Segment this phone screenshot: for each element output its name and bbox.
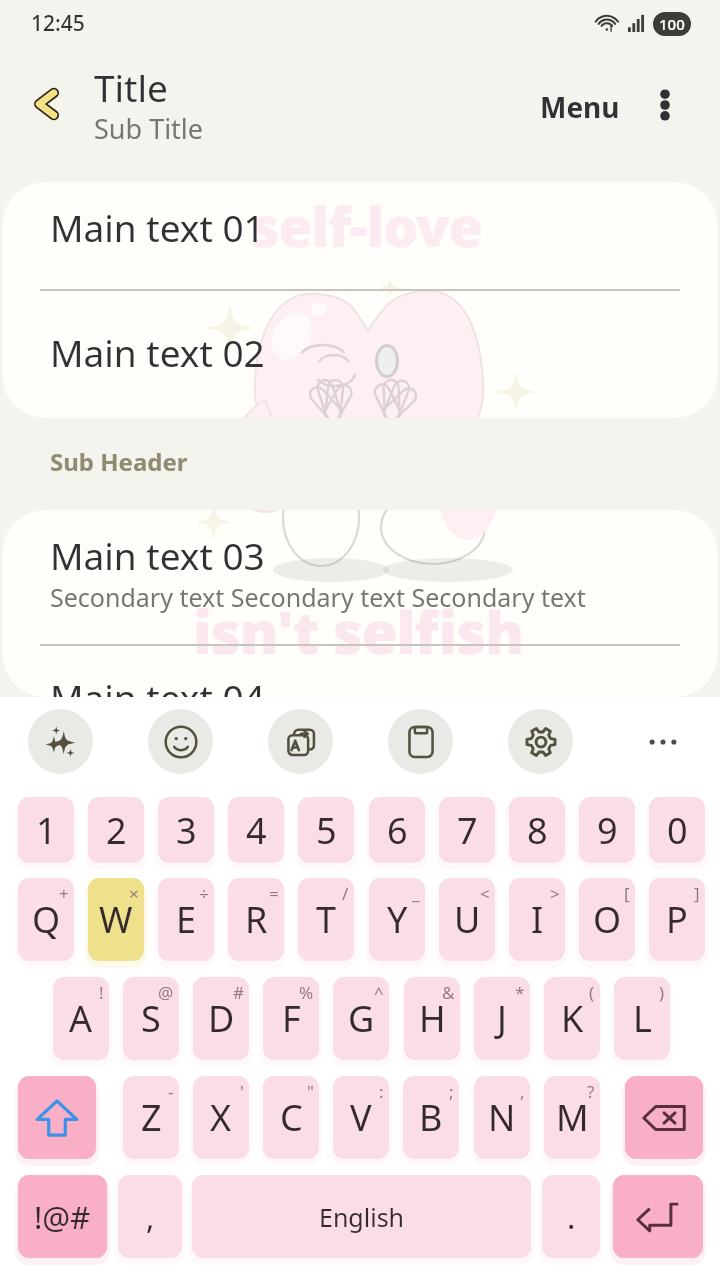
button[interactable]: Settings — [508, 709, 573, 774]
staticText: L — [633, 994, 652, 1043]
button[interactable]: Q — [18, 878, 74, 961]
button[interactable]: Main text 02 — [2, 302, 718, 402]
staticText: R — [245, 895, 268, 944]
button[interactable]: 9 — [579, 797, 635, 863]
button[interactable]: Enter — [613, 1175, 703, 1258]
button[interactable]: Main text 04 — [2, 647, 718, 747]
button[interactable]: More options — [636, 76, 694, 134]
staticText: F — [282, 994, 301, 1043]
button[interactable]: V — [333, 1076, 389, 1159]
staticText: self-love — [251, 188, 482, 263]
button[interactable]: Y — [369, 878, 425, 961]
staticText: V — [350, 1093, 372, 1142]
staticText: Sub Title — [94, 110, 204, 147]
button[interactable]: 0 — [649, 797, 705, 863]
staticText: 12:45 — [31, 9, 85, 38]
button[interactable]: C — [263, 1076, 319, 1159]
button[interactable]: . — [542, 1175, 600, 1258]
button[interactable]: P — [649, 878, 705, 961]
button[interactable]: Back — [18, 76, 74, 132]
button[interactable]: 7 — [439, 797, 495, 863]
staticText: # — [233, 981, 244, 1004]
staticText: _ — [412, 882, 420, 905]
staticText: English — [319, 1200, 405, 1234]
staticText: ) — [659, 981, 665, 1004]
button[interactable]: Main text 03 — [2, 504, 718, 639]
button[interactable]: Shift — [18, 1076, 96, 1159]
button[interactable]: N — [474, 1076, 530, 1159]
button[interactable]: A — [53, 977, 109, 1060]
button[interactable]: H — [404, 977, 460, 1060]
button[interactable]: !@# — [18, 1175, 107, 1258]
staticText: & — [442, 981, 455, 1004]
button[interactable]: D — [193, 977, 249, 1060]
staticText: K — [561, 994, 584, 1043]
staticText: 4 — [246, 806, 267, 855]
button[interactable]: I — [509, 878, 565, 961]
button[interactable]: Title — [94, 62, 168, 112]
staticText: A — [69, 994, 93, 1043]
button[interactable]: J — [474, 977, 530, 1060]
button[interactable]: O — [579, 878, 635, 961]
staticText: ÷ — [199, 882, 209, 905]
button[interactable]: R — [228, 878, 284, 961]
button[interactable]: S — [123, 977, 179, 1060]
button[interactable]: Menu — [524, 78, 636, 136]
staticText: 2 — [106, 806, 127, 855]
staticText: × — [129, 882, 139, 905]
button[interactable]: Emoji — [148, 709, 213, 774]
staticText: S — [141, 994, 161, 1043]
button[interactable]: 1 — [18, 797, 74, 863]
staticText: 5 — [316, 806, 337, 855]
button[interactable]: T — [298, 878, 354, 961]
button[interactable]: Main text 01 — [2, 177, 718, 277]
button[interactable]: Backspace — [625, 1076, 703, 1159]
button[interactable]: X — [193, 1076, 249, 1159]
button[interactable]: 6 — [369, 797, 425, 863]
button[interactable]: Translate — [268, 709, 333, 774]
staticText: ! — [99, 981, 104, 1004]
staticText: Z — [141, 1093, 162, 1142]
staticText: / — [342, 882, 349, 905]
button[interactable]: 3 — [158, 797, 214, 863]
button[interactable]: E — [158, 878, 214, 961]
staticText: ; — [449, 1080, 454, 1103]
button[interactable]: More — [630, 709, 695, 774]
button[interactable]: F — [263, 977, 319, 1060]
button[interactable]: 4 — [228, 797, 284, 863]
staticText: Menu — [540, 88, 620, 126]
button[interactable]: Z — [123, 1076, 179, 1159]
staticText: Main text 03 — [50, 530, 265, 580]
button[interactable]: 5 — [298, 797, 354, 863]
button[interactable]: Clipboard — [388, 709, 453, 774]
button[interactable]: W — [88, 878, 144, 961]
staticText: M — [556, 1093, 589, 1142]
staticText: I — [531, 895, 544, 944]
button[interactable]: , — [118, 1175, 182, 1258]
staticText: % — [299, 981, 314, 1004]
staticText: ? — [587, 1080, 595, 1103]
button[interactable]: U — [439, 878, 495, 961]
button[interactable]: K — [544, 977, 600, 1060]
button[interactable]: L — [614, 977, 670, 1060]
button[interactable]: G — [333, 977, 389, 1060]
button[interactable]: Suggestions — [28, 709, 93, 774]
staticText: H — [419, 994, 446, 1043]
staticText: U — [454, 895, 481, 944]
button[interactable]: Sub Title — [94, 110, 204, 147]
staticText: ' — [240, 1080, 244, 1103]
staticText: ] — [694, 882, 700, 905]
staticText: isn't selfish — [193, 592, 524, 671]
staticText: B — [419, 1093, 443, 1142]
button[interactable]: B — [403, 1076, 459, 1159]
button[interactable]: M — [544, 1076, 600, 1159]
staticText: " — [307, 1080, 314, 1103]
staticText: < — [480, 882, 490, 905]
staticText: Main text 04 — [50, 672, 265, 722]
staticText: = — [269, 882, 279, 905]
staticText: , — [146, 1196, 155, 1238]
button[interactable]: 2 — [88, 797, 144, 863]
staticText: ( — [589, 981, 595, 1004]
button[interactable]: English — [192, 1175, 531, 1258]
button[interactable]: 8 — [509, 797, 565, 863]
